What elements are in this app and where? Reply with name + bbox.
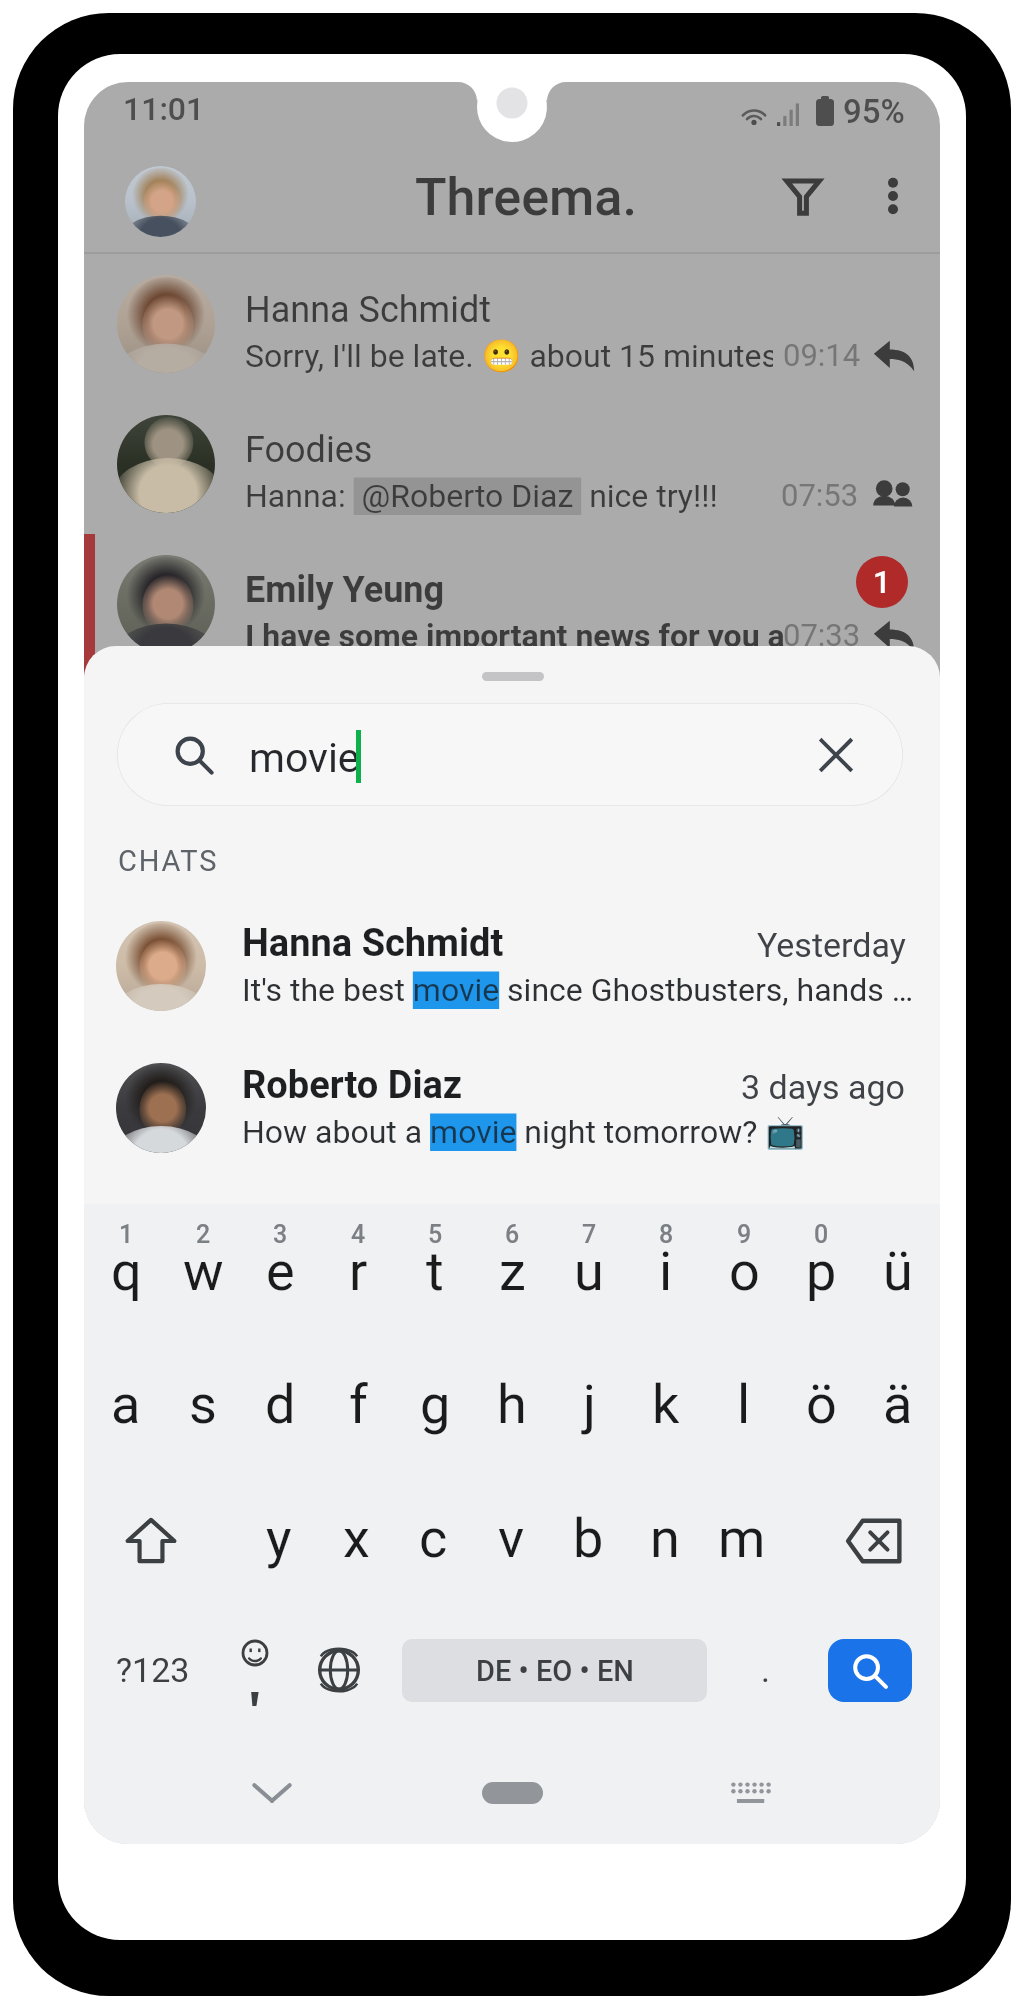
button[interactable]: i <box>626 1234 706 1314</box>
button[interactable]: Shift <box>109 1504 193 1578</box>
staticText: n <box>650 1507 680 1570</box>
staticText: t <box>426 1240 444 1303</box>
staticText: ?123 <box>116 1650 190 1690</box>
staticText: movie <box>249 734 360 782</box>
staticText: 8 <box>659 1220 674 1249</box>
button[interactable]: t <box>395 1234 475 1314</box>
button[interactable]: Change language <box>299 1634 379 1706</box>
staticText: x <box>343 1507 370 1570</box>
staticText: u <box>574 1240 604 1303</box>
staticText: w <box>183 1240 224 1303</box>
staticText: 6 <box>505 1220 520 1249</box>
staticText: How about a movie night tomorrow? 📺 <box>242 1113 806 1151</box>
button[interactable]: q <box>86 1234 166 1314</box>
staticText: . <box>761 1650 770 1690</box>
button[interactable]: u <box>549 1234 629 1314</box>
staticText: CHATS <box>118 844 219 878</box>
staticText: b <box>573 1507 604 1570</box>
staticText: d <box>265 1373 296 1436</box>
staticText: 3 <box>273 1220 288 1249</box>
button[interactable]: movie <box>117 703 903 806</box>
button[interactable]: k <box>626 1367 706 1447</box>
staticText: 95% <box>843 92 905 131</box>
staticText: ö <box>806 1373 837 1436</box>
staticText: a <box>111 1373 141 1436</box>
staticText: Sorry, I'll be late. 😬 about 15 minutes <box>245 337 773 375</box>
staticText: e <box>266 1240 295 1303</box>
button[interactable]: y <box>239 1501 319 1581</box>
button[interactable]: More options <box>857 160 929 232</box>
staticText: z <box>499 1240 526 1303</box>
button[interactable]: Backspace <box>832 1504 916 1578</box>
button[interactable]: c <box>393 1501 473 1581</box>
staticText: DE • EO • EN <box>476 1654 634 1688</box>
button[interactable]: ö <box>781 1367 861 1447</box>
button[interactable]: Hanna Schmidt <box>84 921 940 1049</box>
button[interactable]: o <box>704 1234 784 1314</box>
button[interactable]: p <box>781 1234 861 1314</box>
staticText: Foodies <box>245 429 373 471</box>
button[interactable]: v <box>471 1501 551 1581</box>
staticText: o <box>729 1240 760 1303</box>
staticText: 9 <box>737 1220 752 1249</box>
button[interactable]: Emoji <box>215 1626 295 1714</box>
staticText: Hanna: @Roberto Diaz nice try!!! <box>245 477 718 515</box>
button[interactable]: s <box>163 1367 243 1447</box>
button[interactable]: l <box>704 1367 784 1447</box>
button[interactable]: w <box>163 1234 243 1314</box>
button[interactable]: Roberto Diaz <box>84 1063 940 1191</box>
staticText: j <box>583 1373 596 1436</box>
staticText: 2 <box>196 1220 211 1249</box>
staticText: p <box>806 1240 837 1303</box>
staticText: k <box>652 1373 680 1436</box>
button[interactable]: DE • EO • EN <box>402 1639 707 1702</box>
button[interactable]: Switch keyboard <box>711 1761 791 1825</box>
staticText: m <box>718 1507 766 1570</box>
button[interactable]: m <box>702 1501 782 1581</box>
staticText: 7 <box>582 1220 597 1249</box>
staticText: 1 <box>873 564 891 600</box>
staticText: i <box>659 1240 673 1303</box>
button[interactable]: Search <box>828 1639 912 1702</box>
staticText: 1 <box>119 1220 134 1249</box>
button[interactable]: h <box>472 1367 552 1447</box>
staticText: I have some important news for you a <box>245 617 785 655</box>
button[interactable]: d <box>240 1367 320 1447</box>
button[interactable]: a <box>86 1367 166 1447</box>
staticText: q <box>111 1240 142 1303</box>
button[interactable]: n <box>625 1501 705 1581</box>
button[interactable]: j <box>549 1367 629 1447</box>
button[interactable]: g <box>395 1367 475 1447</box>
button[interactable]: b <box>548 1501 628 1581</box>
staticText: c <box>419 1507 448 1570</box>
button[interactable]: . <box>725 1634 805 1706</box>
staticText: 3 days ago <box>741 1067 906 1107</box>
staticText: y <box>266 1507 292 1570</box>
staticText: Yesterday <box>757 925 906 965</box>
button[interactable]: Foodies <box>84 394 940 534</box>
staticText: 5 <box>428 1220 443 1249</box>
button[interactable]: Profile <box>125 166 196 237</box>
button[interactable]: Hide keyboard <box>232 1761 312 1825</box>
button[interactable]: f <box>318 1367 398 1447</box>
button[interactable]: r <box>318 1234 398 1314</box>
staticText: s <box>189 1373 217 1436</box>
staticText: 11:01 <box>123 90 205 128</box>
button[interactable]: ?123 <box>111 1634 195 1706</box>
staticText: 4 <box>351 1220 366 1249</box>
button[interactable]: Clear search <box>814 733 858 777</box>
staticText: 07:33 <box>783 617 861 653</box>
staticText: ä <box>883 1373 913 1436</box>
button[interactable]: e <box>240 1234 320 1314</box>
button[interactable]: z <box>472 1234 552 1314</box>
button[interactable]: Home <box>482 1782 543 1804</box>
button[interactable]: ü <box>858 1234 938 1314</box>
button[interactable]: x <box>316 1501 396 1581</box>
staticText: h <box>497 1373 527 1436</box>
button[interactable]: Hanna Schmidt <box>84 254 940 394</box>
button[interactable]: ä <box>858 1367 938 1447</box>
button[interactable]: Filter <box>767 160 839 232</box>
staticText: v <box>498 1507 525 1570</box>
button[interactable]: Emily Yeung <box>84 534 940 674</box>
staticText: 09:14 <box>783 337 861 373</box>
